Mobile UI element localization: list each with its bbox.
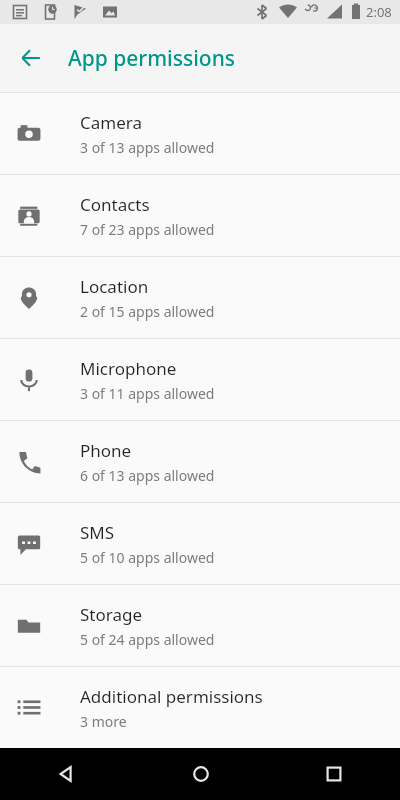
staticText: Additional permissions <box>80 685 263 708</box>
staticText: Contacts <box>80 193 150 216</box>
staticText: Phone <box>80 439 132 462</box>
staticText: 2:08 <box>366 3 392 21</box>
button[interactable]: Contacts <box>0 175 400 256</box>
staticText: Microphone <box>80 357 177 380</box>
button[interactable]: Additional permissions <box>0 667 400 748</box>
button[interactable]: Recent apps <box>267 748 400 800</box>
staticText: 2 of 15 apps allowed <box>80 302 215 321</box>
staticText: 3 of 13 apps allowed <box>80 138 215 157</box>
staticText: Location <box>80 275 149 298</box>
button[interactable]: Home <box>134 748 267 800</box>
button[interactable]: SMS <box>0 503 400 584</box>
staticText: 5 of 24 apps allowed <box>80 630 215 649</box>
button[interactable]: Camera <box>0 93 400 174</box>
staticText: Storage <box>80 603 143 626</box>
staticText: App permissions <box>68 44 236 73</box>
button[interactable]: Phone <box>0 421 400 502</box>
staticText: 6 of 13 apps allowed <box>80 466 215 485</box>
staticText: SMS <box>80 521 115 544</box>
staticText: Camera <box>80 111 142 134</box>
button[interactable]: Storage <box>0 585 400 666</box>
staticText: 3 more <box>80 712 127 731</box>
staticText: 5 of 10 apps allowed <box>80 548 215 567</box>
button[interactable]: Microphone <box>0 339 400 420</box>
staticText: 3 of 11 apps allowed <box>80 384 215 403</box>
staticText: 7 of 23 apps allowed <box>80 220 215 239</box>
button[interactable]: Back <box>8 35 54 81</box>
button[interactable]: Back <box>0 748 134 800</box>
button[interactable]: Location <box>0 257 400 338</box>
